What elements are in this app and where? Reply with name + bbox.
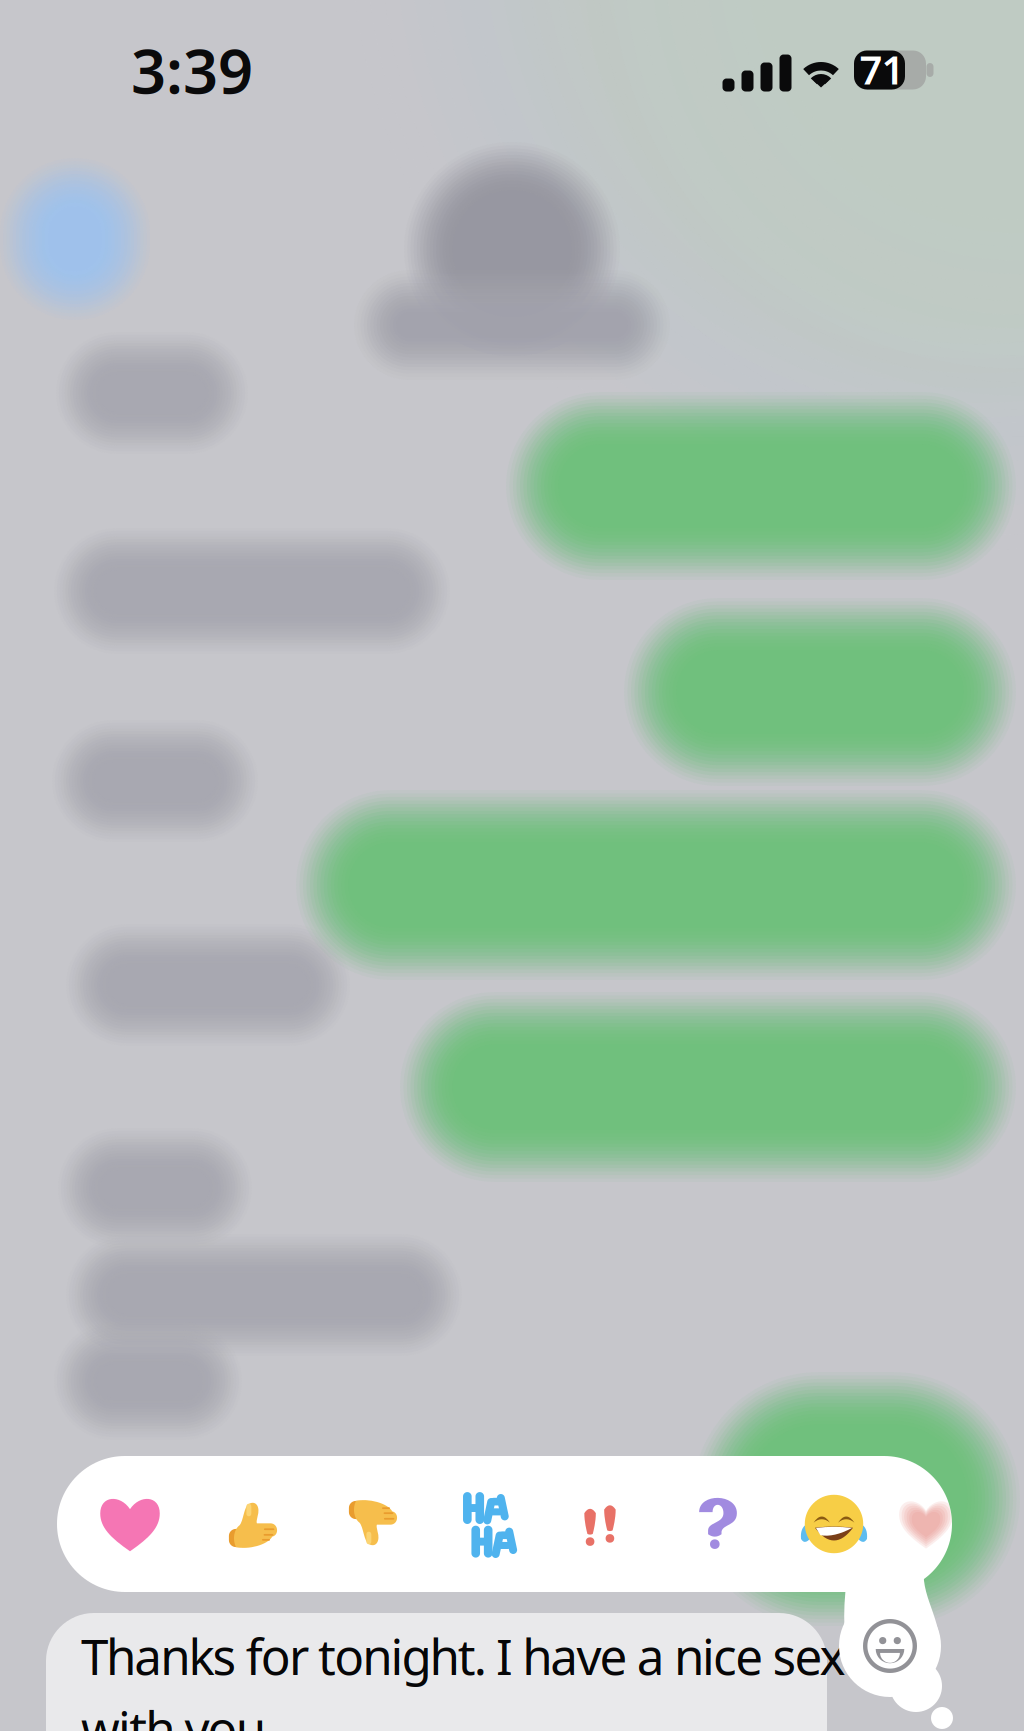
staticText: 3:39	[131, 29, 253, 111]
button[interactable]: Laugh	[778, 1456, 890, 1592]
button[interactable]: Dislike	[316, 1456, 428, 1592]
button[interactable]: Like	[196, 1456, 308, 1592]
button[interactable]: Haha	[434, 1456, 546, 1592]
button[interactable]: Question	[662, 1456, 774, 1592]
staticText: Thanks for tonight. I have a nice sex	[81, 1623, 846, 1688]
button[interactable]: Add reaction	[852, 1608, 928, 1684]
button[interactable]: Exclamation	[544, 1456, 656, 1592]
staticText: 71	[860, 42, 904, 95]
staticText: with you.	[81, 1695, 277, 1731]
button[interactable]: Love	[74, 1456, 186, 1592]
